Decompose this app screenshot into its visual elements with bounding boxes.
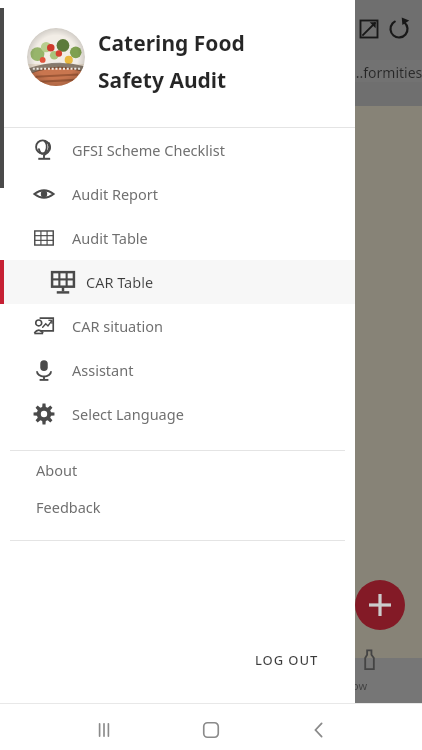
button[interactable]: Home bbox=[195, 714, 227, 746]
button[interactable]: CAR Table bbox=[0, 260, 355, 304]
button[interactable]: LOG OUT bbox=[247, 645, 327, 675]
staticText: Audit Table bbox=[72, 228, 148, 248]
button[interactable]: About bbox=[0, 451, 355, 488]
staticText: ow bbox=[352, 678, 368, 693]
button[interactable]: Refresh bbox=[382, 12, 416, 46]
staticText: ...formities bbox=[352, 63, 422, 82]
button[interactable]: Feedback bbox=[0, 488, 355, 525]
button[interactable]: Select Language bbox=[0, 392, 355, 436]
button[interactable]: Back bbox=[303, 714, 335, 746]
staticText: Feedback bbox=[36, 497, 101, 517]
button[interactable]: CAR situation bbox=[0, 304, 355, 348]
button[interactable]: GFSI Scheme Checklist bbox=[0, 128, 355, 172]
button[interactable]: Add bbox=[355, 580, 405, 630]
staticText: Assistant bbox=[72, 360, 134, 380]
staticText: CAR situation bbox=[72, 316, 163, 336]
button[interactable]: Audit Report bbox=[0, 172, 355, 216]
button[interactable]: Export bbox=[352, 12, 386, 46]
staticText: Audit Report bbox=[72, 184, 158, 204]
staticText: About bbox=[36, 460, 78, 480]
staticText: GFSI Scheme Checklist bbox=[72, 140, 225, 160]
button[interactable]: Assistant bbox=[0, 348, 355, 392]
button[interactable]: Audit Table bbox=[0, 216, 355, 260]
staticText: LOG OUT bbox=[255, 651, 319, 669]
staticText: Safety Audit bbox=[98, 66, 227, 95]
staticText: Catering Food bbox=[98, 29, 245, 58]
button[interactable]: Recent apps bbox=[88, 714, 120, 746]
staticText: CAR Table bbox=[86, 272, 154, 292]
staticText: Select Language bbox=[72, 404, 184, 424]
